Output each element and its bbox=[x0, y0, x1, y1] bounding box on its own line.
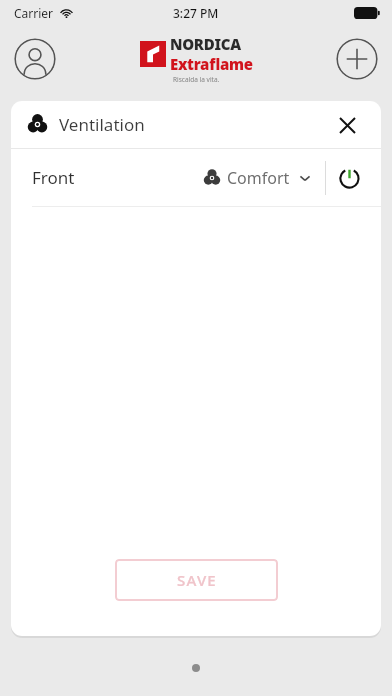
button[interactable]: Add bbox=[336, 38, 378, 80]
staticText: Comfort bbox=[227, 167, 290, 189]
staticText: Extraflame bbox=[170, 54, 253, 74]
staticText: Riscalda la vita. bbox=[173, 75, 220, 84]
staticText: 3:27 PM bbox=[173, 5, 219, 21]
button[interactable]: Comfort bbox=[204, 167, 311, 189]
staticText: Carrier bbox=[14, 5, 54, 21]
button[interactable]: SAVE bbox=[115, 559, 278, 601]
button[interactable]: Profile bbox=[14, 38, 56, 80]
button[interactable]: Close bbox=[330, 108, 364, 142]
button[interactable]: Power bbox=[326, 155, 372, 201]
button[interactable]: Front bbox=[11, 149, 381, 206]
staticText: Front bbox=[32, 166, 75, 189]
staticText: SAVE bbox=[177, 570, 217, 590]
staticText: Ventilation bbox=[59, 113, 145, 136]
staticText: NORDICA bbox=[170, 34, 241, 54]
